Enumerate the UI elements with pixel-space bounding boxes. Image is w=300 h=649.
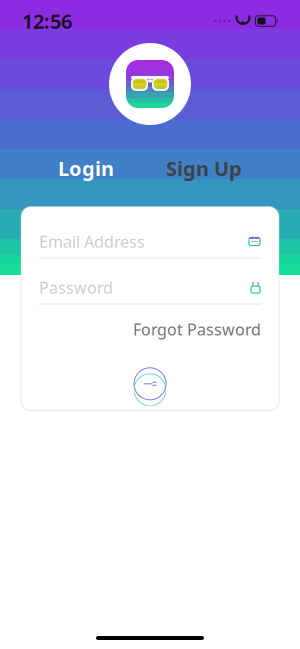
staticText: Password <box>39 277 113 298</box>
staticText: Email Address <box>39 231 145 252</box>
button[interactable]: Submit <box>127 361 173 407</box>
button[interactable]: Forgot Password <box>133 315 261 344</box>
button[interactable]: Sign Up <box>152 149 256 188</box>
staticText: Forgot Password <box>133 319 261 340</box>
button[interactable]: Login <box>44 149 128 188</box>
staticText: Sign Up <box>166 155 242 182</box>
staticText: 12:56 <box>22 8 72 34</box>
staticText: Login <box>58 155 114 182</box>
